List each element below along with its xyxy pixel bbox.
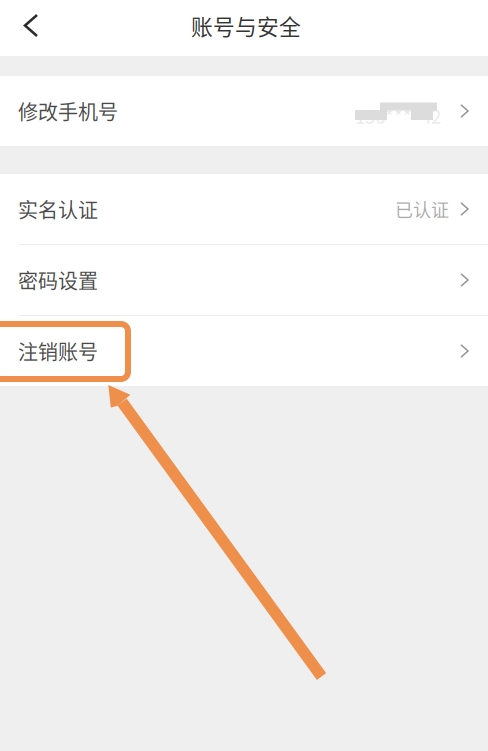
button[interactable]: 密码设置	[0, 245, 488, 315]
staticText: 已认证	[395, 196, 449, 222]
button[interactable]: 注销账号	[0, 316, 488, 386]
staticText: 注销账号	[18, 336, 98, 365]
staticText: 账号与安全	[191, 10, 301, 41]
staticText: 实名认证	[18, 194, 98, 223]
button[interactable]: 修改手机号	[0, 76, 488, 146]
staticText: 密码设置	[18, 265, 98, 294]
button[interactable]: 实名认证	[0, 174, 488, 244]
staticText: 136****42	[355, 102, 441, 129]
button[interactable]: Back	[8, 0, 54, 56]
staticText: 修改手机号	[18, 96, 118, 125]
